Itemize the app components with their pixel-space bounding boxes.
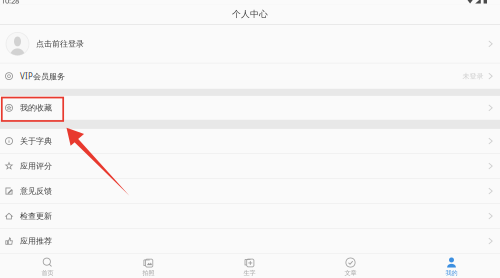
staticText: 个人中心 [232,9,268,20]
staticText: 首页 [41,269,53,277]
button[interactable]: 应用评分 [0,154,500,178]
button[interactable]: 检查更新 [0,204,500,228]
staticText: 检查更新 [20,211,52,221]
button[interactable]: 应用推荐 [0,229,500,253]
button[interactable]: 意见反馈 [0,179,500,203]
staticText: 文章 [344,269,356,277]
button[interactable]: VIP会员服务 [0,63,500,89]
staticText: 应用推荐 [20,236,52,246]
button[interactable]: 我的 [401,253,500,278]
button[interactable]: 拍照 [98,253,199,278]
staticText: 生字 [243,269,255,277]
button[interactable]: 首页 [0,253,98,278]
button[interactable]: 文章 [300,253,401,278]
staticText: 10:28 [1,0,19,6]
staticText: 关于字典 [20,136,52,146]
staticText: 意见反馈 [20,186,52,196]
staticText: 应用评分 [20,161,52,171]
button[interactable]: 关于字典 [0,129,500,153]
button[interactable]: 生字 [199,253,300,278]
button[interactable]: 我的收藏 [0,96,500,120]
staticText: 我的 [445,269,457,277]
staticText: 我的收藏 [20,103,52,113]
staticText: VIP会员服务 [20,71,65,82]
button[interactable]: 点击前往登录 [0,25,500,63]
staticText: 未登录 [462,72,483,80]
staticText: 拍照 [142,269,154,277]
staticText: 点击前往登录 [36,39,84,49]
